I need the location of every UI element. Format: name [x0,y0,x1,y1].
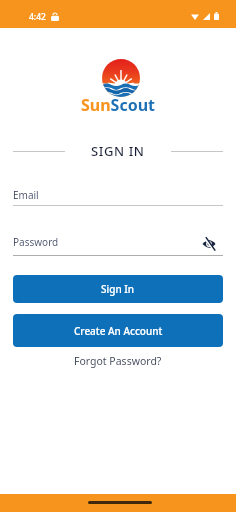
staticText: 4:42 [29,11,46,23]
button[interactable] [202,237,217,251]
button[interactable]: Forgot Password? [74,354,162,368]
button[interactable]: Sign In [13,275,223,303]
staticText: Forgot Password? [74,354,162,368]
staticText: SunScout [81,94,156,116]
staticText: Create An Account [74,324,163,338]
staticText: SIGN IN [91,142,145,160]
staticText: Password [13,235,59,249]
staticText: Sign In [101,282,135,296]
button[interactable]: Create An Account [13,314,223,347]
staticText: Email [13,188,39,202]
